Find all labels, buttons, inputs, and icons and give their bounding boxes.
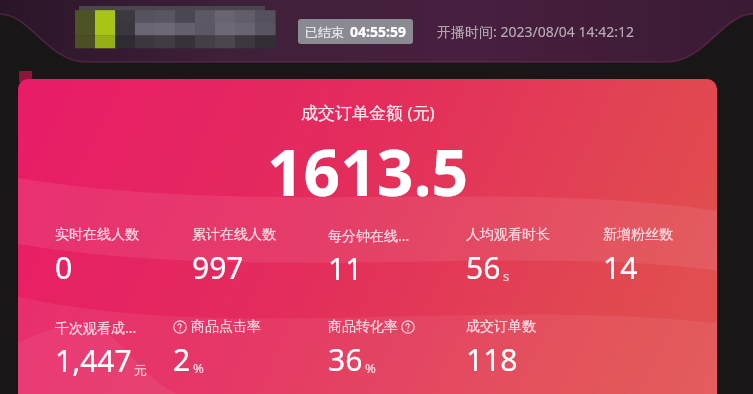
staticText: 11 bbox=[328, 248, 363, 289]
staticText: 成交订单数 bbox=[466, 318, 536, 336]
staticText: % bbox=[193, 359, 204, 377]
button[interactable]: 商品转化率 bbox=[328, 318, 415, 380]
staticText: 商品转化率 bbox=[328, 318, 398, 336]
staticText: 1613.5 bbox=[267, 128, 469, 215]
staticText: 1,447 bbox=[55, 340, 132, 381]
staticText: 商品点击率 bbox=[191, 318, 261, 336]
staticText: 新增粉丝数 bbox=[603, 226, 673, 244]
button[interactable]: 千次观看成... bbox=[55, 318, 147, 381]
staticText: 元 bbox=[134, 362, 147, 378]
staticText: 04:55:59 bbox=[350, 22, 406, 41]
button[interactable]: 成交订单数 bbox=[466, 318, 536, 380]
staticText: 千次观看成... bbox=[55, 318, 137, 337]
staticText: 56 bbox=[466, 247, 501, 288]
button[interactable]: 成交订单金额 (元) bbox=[18, 79, 717, 394]
button[interactable]: 说明 bbox=[401, 320, 415, 334]
staticText: 2 bbox=[173, 339, 191, 380]
staticText: 实时在线人数 bbox=[55, 226, 139, 244]
staticText: 每分钟在线... bbox=[328, 226, 410, 245]
staticText: 已结束 bbox=[305, 24, 344, 40]
staticText: 36 bbox=[328, 339, 363, 380]
button[interactable]: 说明 bbox=[173, 318, 261, 380]
button[interactable]: 已结束 bbox=[298, 19, 413, 44]
staticText: s bbox=[503, 267, 510, 285]
staticText: 14 bbox=[603, 247, 638, 288]
button[interactable]: 新增粉丝数 bbox=[603, 226, 673, 288]
staticText: 0 bbox=[55, 247, 73, 288]
button[interactable]: 说明 bbox=[173, 320, 187, 334]
button[interactable]: 每分钟在线... bbox=[328, 226, 410, 289]
staticText: % bbox=[365, 359, 376, 377]
button[interactable]: 实时在线人数 bbox=[55, 226, 139, 288]
staticText: 997 bbox=[192, 247, 244, 288]
staticText: 人均观看时长 bbox=[466, 226, 550, 244]
staticText: 开播时间: 2023/08/04 14:42:12 bbox=[437, 22, 635, 41]
button[interactable]: 人均观看时长 bbox=[466, 226, 550, 288]
staticText: 118 bbox=[466, 339, 518, 380]
staticText: 成交订单金额 (元) bbox=[301, 101, 435, 124]
staticText: 累计在线人数 bbox=[192, 226, 276, 244]
button[interactable]: 累计在线人数 bbox=[192, 226, 276, 288]
